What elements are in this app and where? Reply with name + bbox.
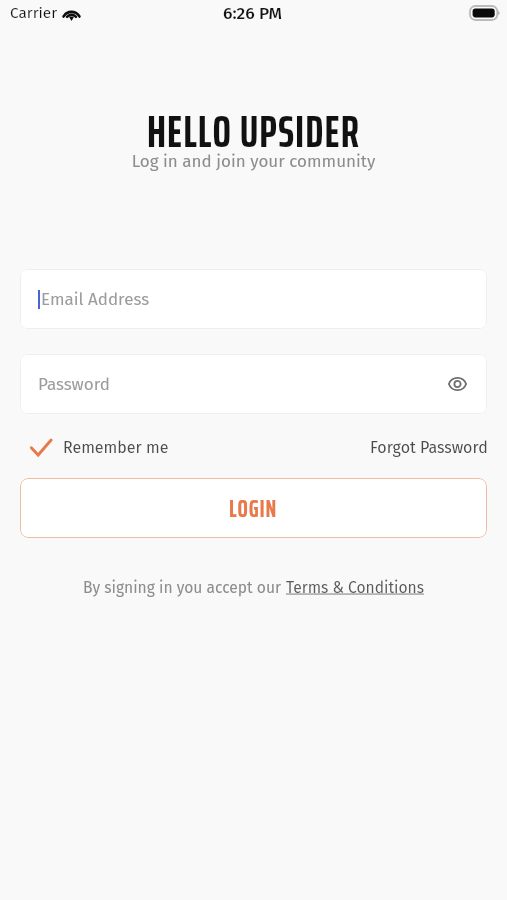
staticText: Forgot Password [370, 438, 488, 457]
staticText: HELLO UPSIDER [0, 97, 507, 166]
staticText: Remember me [63, 438, 169, 457]
staticText: LOGIN [229, 489, 278, 528]
staticText: Email Address [41, 289, 150, 309]
staticText: 6:26 PM [0, 3, 506, 24]
button[interactable]: Remember me [30, 438, 173, 457]
button[interactable]: LOGIN [20, 478, 487, 538]
staticText: By signing in you accept our [83, 578, 286, 597]
staticText: Log in and join your community [0, 151, 507, 171]
staticText: Password [38, 374, 110, 394]
button[interactable]: Forgot Password [370, 438, 488, 457]
button[interactable]: Password [20, 354, 487, 414]
staticText: Carrier [10, 4, 58, 22]
staticText: Terms & Conditions [286, 578, 424, 597]
button[interactable]: Show password [444, 371, 470, 397]
button[interactable]: Terms & Conditions [286, 578, 424, 597]
button[interactable]: Email Address [20, 269, 487, 329]
